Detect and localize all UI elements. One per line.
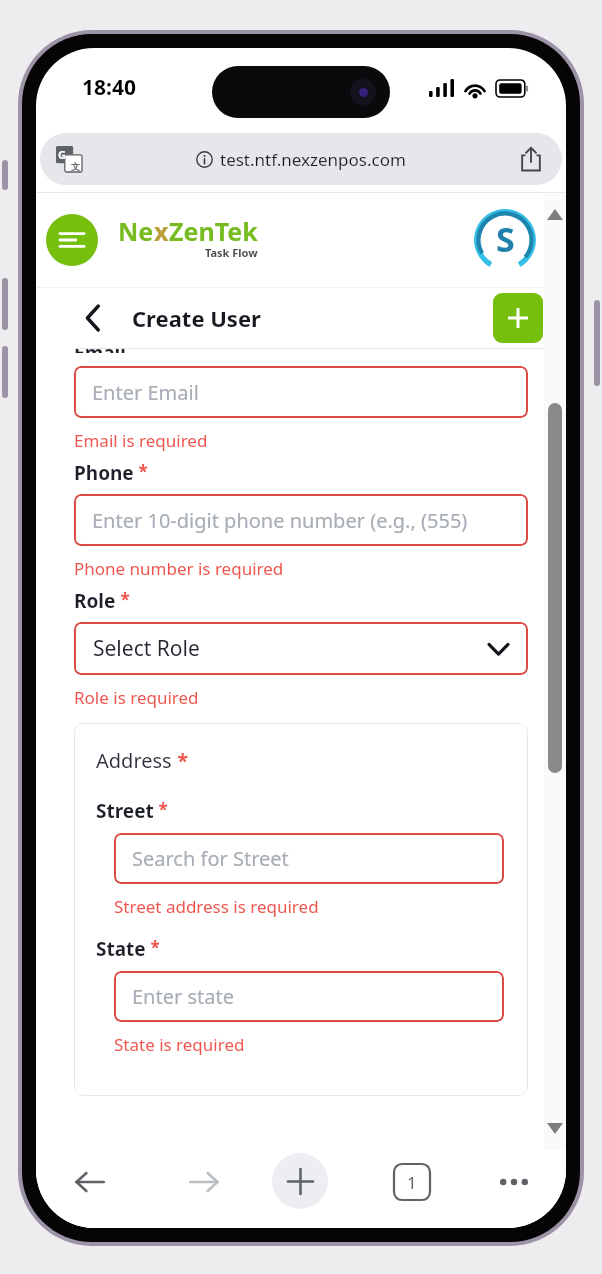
staticText: * xyxy=(134,460,148,483)
staticText: State is required xyxy=(114,1033,245,1056)
staticText: 18:40 xyxy=(82,73,136,102)
staticText: Role xyxy=(74,588,116,614)
staticText: Phone number is required xyxy=(74,557,284,580)
staticText: 文 xyxy=(71,161,80,172)
staticText: Enter Email xyxy=(92,379,199,406)
staticText: State xyxy=(96,936,146,962)
staticText: S xyxy=(496,216,515,262)
staticText: Enter state xyxy=(132,983,234,1010)
staticText: Ne xyxy=(118,214,154,248)
staticText: Email is required xyxy=(74,429,208,452)
staticText: Email xyxy=(74,349,126,353)
staticText: Task Flow xyxy=(205,245,258,260)
button[interactable]: Enter Email xyxy=(74,366,528,418)
button[interactable]: Enter 10-digit phone number (e.g., (555) xyxy=(74,494,528,546)
staticText: Address xyxy=(96,747,172,774)
staticText: * xyxy=(146,936,160,959)
staticText: * xyxy=(116,588,130,611)
staticText: Phone xyxy=(74,460,134,486)
staticText: Select Role xyxy=(93,634,200,663)
button[interactable]: Select Role xyxy=(74,622,528,675)
button[interactable]: Menu xyxy=(46,214,98,266)
staticText: x xyxy=(154,214,169,248)
button[interactable]: New tab xyxy=(272,1153,328,1209)
button[interactable]: More options xyxy=(490,1158,538,1206)
staticText: * xyxy=(154,798,168,821)
staticText: ZenTek xyxy=(169,214,258,248)
other: App logo xyxy=(474,209,536,271)
button[interactable]: Back xyxy=(76,301,110,335)
other: Translate xyxy=(56,146,82,172)
staticText: Search for Street xyxy=(132,845,289,872)
button[interactable]: Enter state xyxy=(114,971,504,1022)
staticText: Street xyxy=(96,798,154,824)
button[interactable]: Search for Street xyxy=(114,833,504,884)
staticText: 1 xyxy=(407,1171,417,1194)
button[interactable]: Share xyxy=(518,146,544,172)
staticText: Role is required xyxy=(74,686,199,709)
staticText: Enter 10-digit phone number (e.g., (555) xyxy=(92,507,468,534)
staticText: Street address is required xyxy=(114,895,319,918)
staticText: G xyxy=(58,147,66,162)
button[interactable]: Add xyxy=(493,293,543,343)
staticText: test.ntf.nexzenpos.com xyxy=(220,148,406,171)
staticText: Create User xyxy=(132,303,261,333)
button[interactable]: Tabs xyxy=(394,1164,430,1200)
button[interactable]: Forward xyxy=(180,1158,228,1206)
staticText: * xyxy=(172,747,189,774)
button[interactable]: Back xyxy=(66,1158,114,1206)
button[interactable]: Translate xyxy=(40,133,562,185)
